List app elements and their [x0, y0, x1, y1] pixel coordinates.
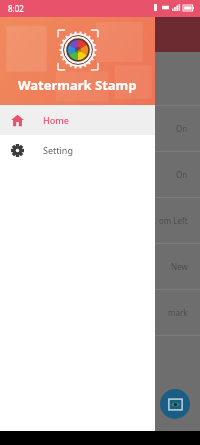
staticText: Watermark Stamp — [18, 76, 137, 94]
staticText: Setting — [43, 144, 73, 156]
staticText: On — [176, 169, 188, 180]
button[interactable]: On — [0, 106, 200, 151]
staticText: Camera — [6, 77, 36, 88]
staticText: mark — [168, 307, 188, 318]
staticText: 8:02 — [8, 3, 24, 14]
button[interactable]: Setting — [0, 135, 155, 165]
staticText: om Left — [159, 215, 188, 226]
button[interactable]: On — [0, 152, 200, 197]
button[interactable]: Preview — [160, 389, 190, 419]
button[interactable]: Home — [0, 105, 155, 135]
button[interactable]: New — [0, 244, 200, 289]
button[interactable]: om Left — [0, 198, 200, 243]
button[interactable]: Camera — [0, 60, 200, 105]
staticText: Home — [43, 114, 69, 126]
staticText: New — [171, 261, 188, 272]
staticText: On — [176, 123, 188, 134]
button[interactable]: mark — [0, 290, 200, 335]
